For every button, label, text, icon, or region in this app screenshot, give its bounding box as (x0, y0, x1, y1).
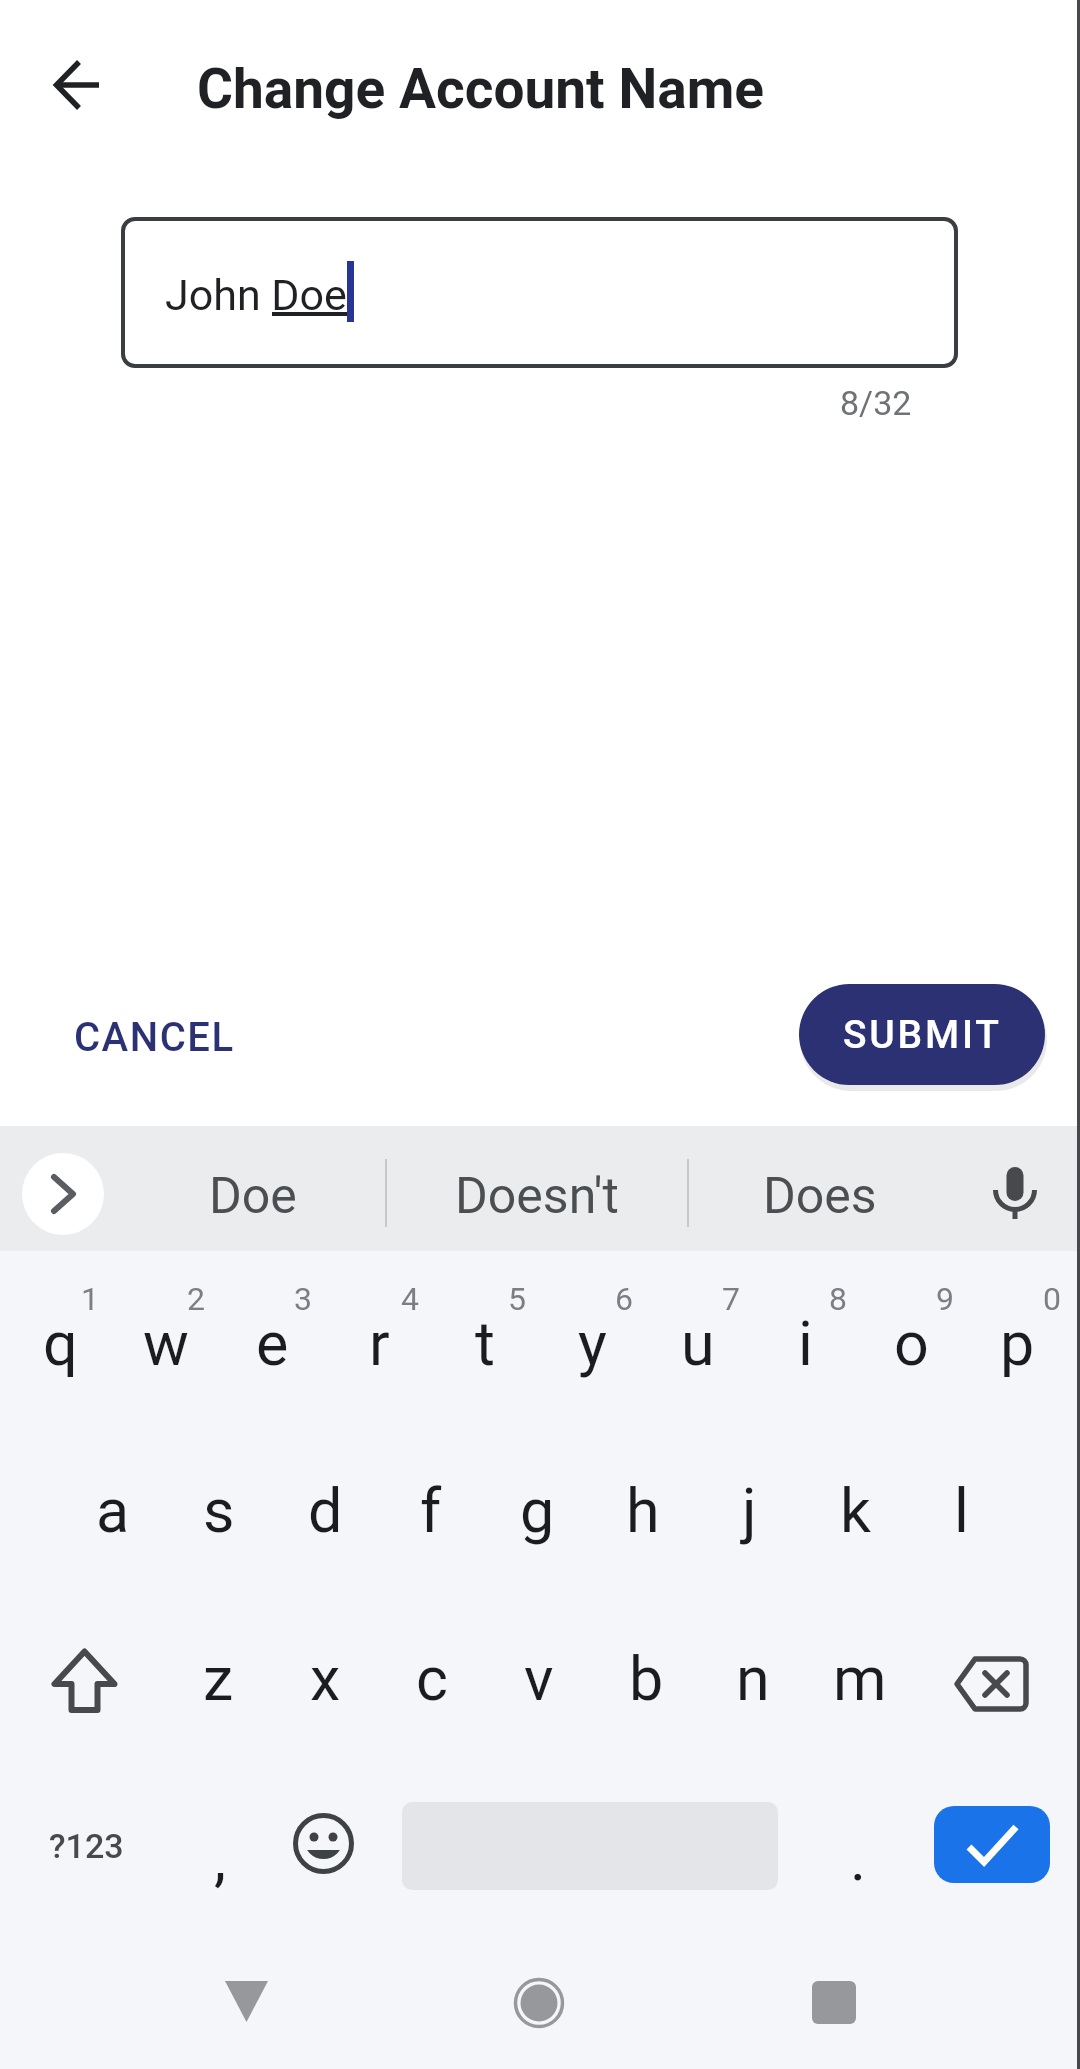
button[interactable]: c (380, 1603, 484, 1753)
button[interactable]: CANCEL (45, 995, 265, 1079)
staticText: c (416, 1643, 448, 1714)
staticText: Does (763, 1167, 877, 1226)
button[interactable] (774, 1942, 894, 2062)
button[interactable]: b (594, 1603, 698, 1753)
staticText: r (369, 1308, 390, 1379)
staticText: z (203, 1643, 234, 1714)
staticText: Change Account Name (197, 57, 765, 121)
button[interactable]: z (166, 1603, 270, 1753)
staticText: , (214, 1823, 227, 1894)
button[interactable]: Doe (113, 1142, 393, 1250)
staticText: w (143, 1308, 189, 1379)
button[interactable]: f (379, 1435, 483, 1585)
staticText: 5 (508, 1280, 526, 1318)
staticText: i (798, 1308, 813, 1379)
button[interactable] (479, 1942, 599, 2062)
button[interactable]: t (433, 1268, 537, 1418)
button[interactable]: q (8, 1268, 112, 1418)
staticText: g (520, 1475, 555, 1546)
staticText: e (256, 1308, 289, 1379)
staticText: a (96, 1475, 130, 1546)
staticText: o (894, 1308, 929, 1379)
staticText: 8 (829, 1280, 847, 1318)
button[interactable]: j (697, 1435, 801, 1585)
button[interactable]: e (220, 1268, 324, 1418)
button[interactable]: g (485, 1435, 589, 1585)
button[interactable]: u (646, 1268, 750, 1418)
button[interactable]: k (803, 1435, 907, 1585)
staticText: 4 (401, 1280, 419, 1318)
staticText: SUBMIT (843, 1012, 1002, 1058)
staticText: 0 (1043, 1280, 1061, 1318)
button[interactable]: d (273, 1435, 377, 1585)
button[interactable]: v (487, 1603, 591, 1753)
staticText: 7 (722, 1280, 740, 1318)
button[interactable]: . (818, 1788, 898, 1928)
staticText: t (475, 1308, 495, 1379)
button[interactable] (934, 1806, 1050, 1883)
staticText: h (626, 1475, 660, 1546)
staticText: f (420, 1475, 442, 1546)
button[interactable] (22, 1153, 104, 1235)
button[interactable]: , (180, 1788, 260, 1928)
button[interactable]: Doesn't (392, 1142, 682, 1250)
button[interactable]: s (167, 1435, 271, 1585)
staticText: 8/32 (840, 383, 912, 423)
button[interactable]: John Doe (121, 217, 958, 368)
button[interactable]: n (701, 1603, 805, 1753)
staticText: p (1000, 1308, 1035, 1379)
staticText: 9 (936, 1280, 954, 1318)
button[interactable]: w (114, 1268, 218, 1418)
button[interactable]: SUBMIT (799, 984, 1045, 1085)
staticText: Doe (209, 1167, 297, 1226)
staticText: v (524, 1643, 554, 1714)
button[interactable]: m (808, 1603, 912, 1753)
staticText: CANCEL (74, 1014, 235, 1061)
staticText: Doesn't (455, 1167, 619, 1226)
button[interactable] (186, 1942, 306, 2062)
button[interactable]: x (273, 1603, 377, 1753)
staticText: y (578, 1308, 607, 1379)
staticText: 6 (615, 1280, 633, 1318)
staticText: John Doe (165, 270, 347, 320)
staticText: b (629, 1643, 664, 1714)
staticText: 3 (294, 1280, 312, 1318)
button[interactable] (27, 1612, 137, 1752)
staticText: 2 (187, 1280, 205, 1318)
button[interactable] (985, 1157, 1047, 1227)
button[interactable]: p (965, 1268, 1069, 1418)
button[interactable]: ?123 (26, 1776, 146, 1916)
staticText: s (203, 1475, 235, 1546)
staticText: x (310, 1643, 341, 1714)
button[interactable]: Does (680, 1142, 960, 1250)
staticText: k (840, 1475, 871, 1546)
button[interactable]: y (540, 1268, 644, 1418)
staticText: m (833, 1643, 887, 1714)
staticText: ?123 (49, 1826, 124, 1866)
button[interactable] (940, 1612, 1050, 1752)
button[interactable]: r (327, 1268, 431, 1418)
staticText: 1 (81, 1280, 99, 1318)
staticText: n (736, 1643, 770, 1714)
staticText: u (681, 1308, 715, 1379)
button[interactable]: o (859, 1268, 963, 1418)
button[interactable]: h (591, 1435, 695, 1585)
staticText: . (850, 1823, 867, 1894)
staticText: d (308, 1475, 343, 1546)
staticText: j (742, 1475, 757, 1546)
button[interactable]: i (753, 1268, 857, 1418)
staticText: l (954, 1475, 969, 1546)
button[interactable]: l (909, 1435, 1013, 1585)
button[interactable]: a (61, 1435, 165, 1585)
staticText: q (43, 1308, 78, 1379)
button[interactable] (272, 1776, 372, 1916)
button[interactable] (33, 41, 121, 129)
